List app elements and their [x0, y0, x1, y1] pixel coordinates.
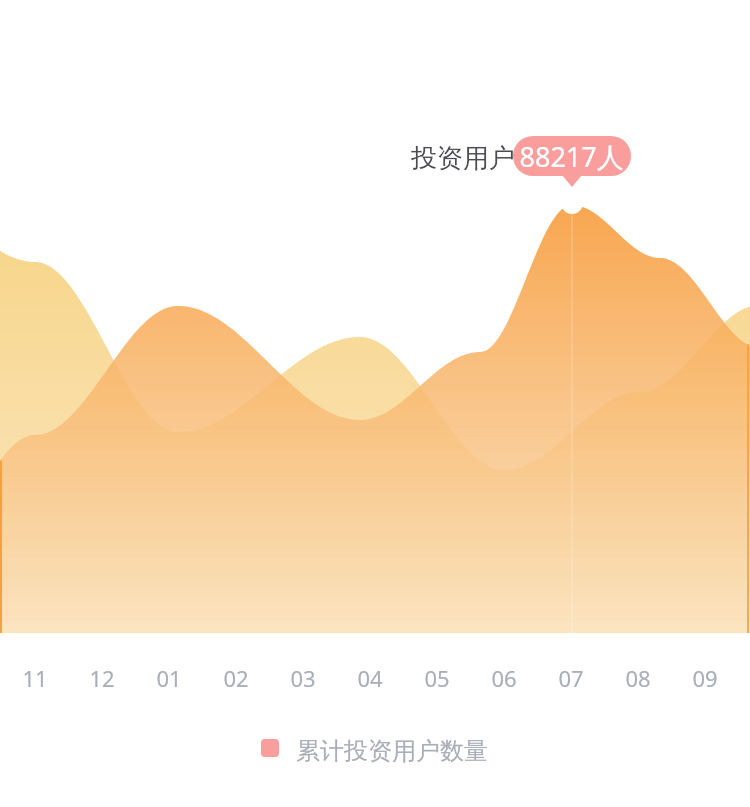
button[interactable]: 累计投资用户数量走势图: [0, 0, 750, 807]
